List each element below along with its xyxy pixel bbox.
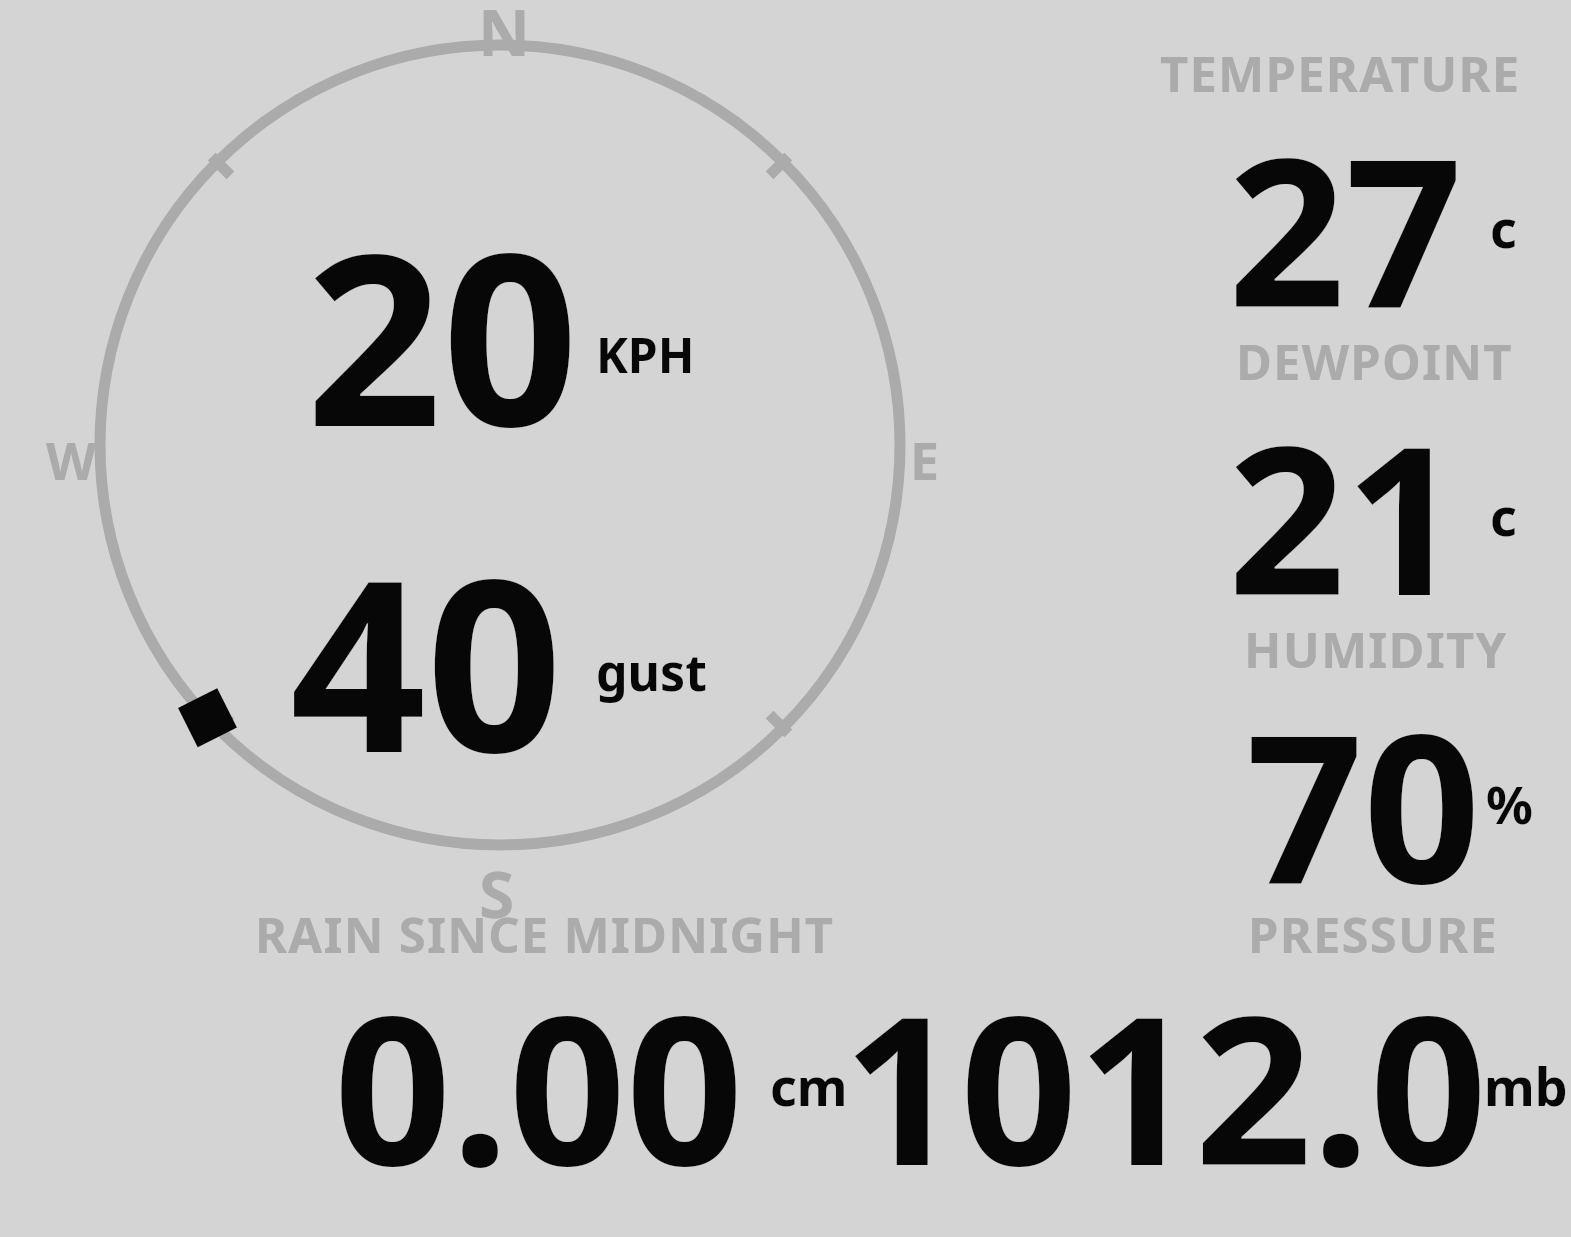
staticText: KPH — [596, 322, 695, 387]
staticText: 70 — [1246, 664, 1481, 943]
staticText: 21 — [1228, 376, 1463, 655]
button[interactable]: Wind direction compass — [80, 25, 920, 865]
staticText: % — [1486, 768, 1533, 839]
staticText: 1012.0 — [843, 946, 1487, 1225]
staticText: gust — [596, 638, 707, 706]
staticText: 27 — [1228, 88, 1463, 367]
staticText: 0.00 — [334, 946, 744, 1225]
staticText: RAIN SINCE MIDNIGHT — [255, 901, 835, 968]
staticText: E — [910, 424, 940, 495]
staticText: mb — [1484, 1050, 1568, 1121]
staticText: TEMPERATURE — [1160, 40, 1521, 107]
staticText: c — [1490, 192, 1517, 263]
staticText: 20 — [306, 172, 579, 496]
staticText: 40 — [290, 498, 563, 822]
staticText: HUMIDITY — [1244, 616, 1508, 683]
staticText: PRESSURE — [1248, 901, 1499, 968]
staticText: cm — [770, 1050, 848, 1121]
staticText: S — [479, 850, 515, 937]
staticText: W — [46, 424, 97, 495]
staticText: DEWPOINT — [1236, 328, 1513, 395]
staticText: N — [478, 0, 531, 75]
staticText: c — [1490, 480, 1517, 551]
